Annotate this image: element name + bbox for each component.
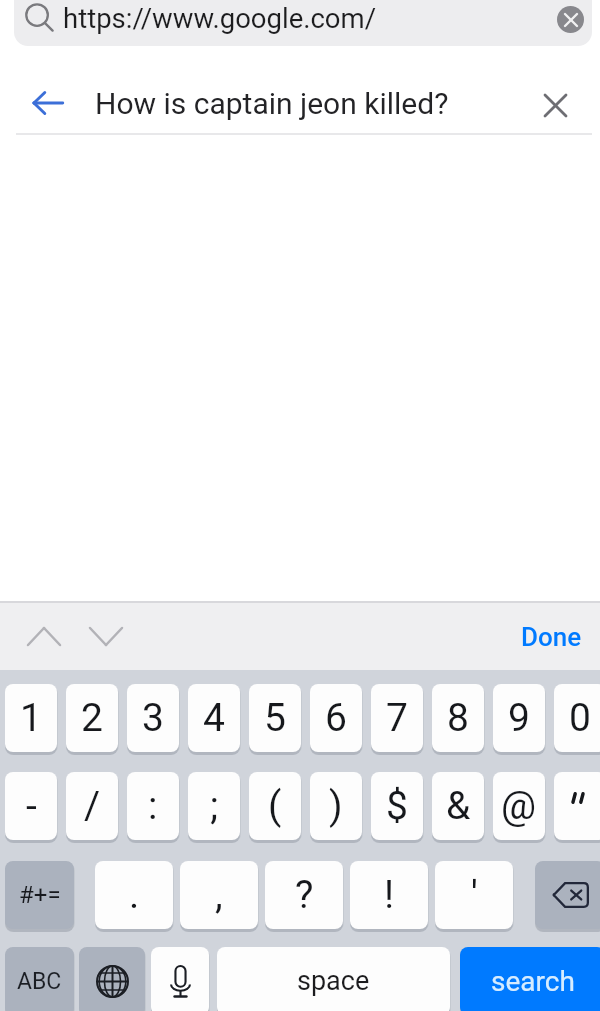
staticText: ( bbox=[268, 783, 282, 829]
button[interactable]: Clear address bbox=[557, 6, 584, 33]
button[interactable]: , bbox=[180, 861, 258, 929]
button[interactable]: $ bbox=[371, 772, 423, 840]
button[interactable]: 9 bbox=[493, 684, 545, 752]
button[interactable]: Dictate bbox=[151, 947, 209, 1011]
button[interactable]: 4 bbox=[188, 684, 240, 752]
staticText: How is captain jeon killed? bbox=[95, 86, 449, 121]
staticText: ) bbox=[329, 783, 343, 829]
button[interactable]: - bbox=[5, 772, 57, 840]
button[interactable]: @ bbox=[493, 772, 545, 840]
staticText: Done bbox=[521, 622, 582, 652]
staticText: @ bbox=[501, 783, 537, 829]
staticText: - bbox=[26, 783, 37, 829]
button[interactable]: search bbox=[460, 947, 600, 1011]
staticText: & bbox=[446, 783, 471, 829]
button[interactable]: 3 bbox=[127, 684, 179, 752]
button[interactable]: 0 bbox=[554, 684, 600, 752]
staticText: 1 bbox=[20, 695, 42, 741]
staticText: search bbox=[491, 965, 575, 998]
staticText: ! bbox=[384, 872, 395, 918]
button[interactable]: ' bbox=[435, 861, 513, 929]
button[interactable]: ? bbox=[265, 861, 343, 929]
staticText: 0 bbox=[569, 695, 591, 741]
button[interactable]: / bbox=[66, 772, 118, 840]
button[interactable]: 5 bbox=[249, 684, 301, 752]
staticText: https://www.google.com/ bbox=[63, 2, 377, 34]
staticText: space bbox=[297, 965, 370, 997]
staticText: 9 bbox=[508, 695, 530, 741]
staticText: ? bbox=[295, 872, 314, 918]
staticText: 7 bbox=[386, 695, 408, 741]
staticText: ' bbox=[471, 872, 478, 918]
button[interactable]: Backspace bbox=[535, 861, 600, 929]
button[interactable]: Next field bbox=[86, 616, 126, 656]
button[interactable]: 7 bbox=[371, 684, 423, 752]
button[interactable]: Change keyboard bbox=[79, 947, 145, 1011]
button[interactable]: ! bbox=[350, 861, 428, 929]
button[interactable]: https://www.google.com/ bbox=[14, 0, 592, 46]
staticText: $ bbox=[386, 783, 408, 829]
button[interactable]: : bbox=[127, 772, 179, 840]
staticText: 2 bbox=[81, 695, 103, 741]
staticText: ABC bbox=[17, 968, 62, 995]
button[interactable]: 6 bbox=[310, 684, 362, 752]
staticText: 5 bbox=[264, 695, 286, 741]
button[interactable]: ( bbox=[249, 772, 301, 840]
button[interactable] bbox=[554, 772, 600, 840]
button[interactable]: Back bbox=[28, 83, 68, 123]
button[interactable]: & bbox=[432, 772, 484, 840]
staticText: ; bbox=[210, 783, 219, 829]
staticText: , bbox=[215, 872, 223, 918]
button[interactable]: ) bbox=[310, 772, 362, 840]
button[interactable]: 1 bbox=[5, 684, 57, 752]
staticText: 4 bbox=[203, 695, 225, 741]
button[interactable]: #+= bbox=[5, 861, 74, 929]
staticText: 8 bbox=[447, 695, 469, 741]
button[interactable]: ABC bbox=[5, 947, 74, 1011]
staticText: : bbox=[148, 783, 158, 829]
button[interactable]: ; bbox=[188, 772, 240, 840]
staticText: 3 bbox=[142, 695, 164, 741]
staticText: #+= bbox=[19, 881, 61, 909]
staticText: 6 bbox=[325, 695, 347, 741]
button[interactable]: 8 bbox=[432, 684, 484, 752]
button[interactable]: . bbox=[95, 861, 173, 929]
button[interactable]: Done bbox=[515, 617, 587, 657]
button[interactable]: Close find bar bbox=[535, 85, 575, 125]
staticText: . bbox=[129, 872, 140, 918]
staticText: / bbox=[84, 783, 101, 829]
button[interactable]: space bbox=[217, 947, 450, 1011]
button[interactable]: 2 bbox=[66, 684, 118, 752]
button[interactable]: Previous field bbox=[24, 616, 64, 656]
